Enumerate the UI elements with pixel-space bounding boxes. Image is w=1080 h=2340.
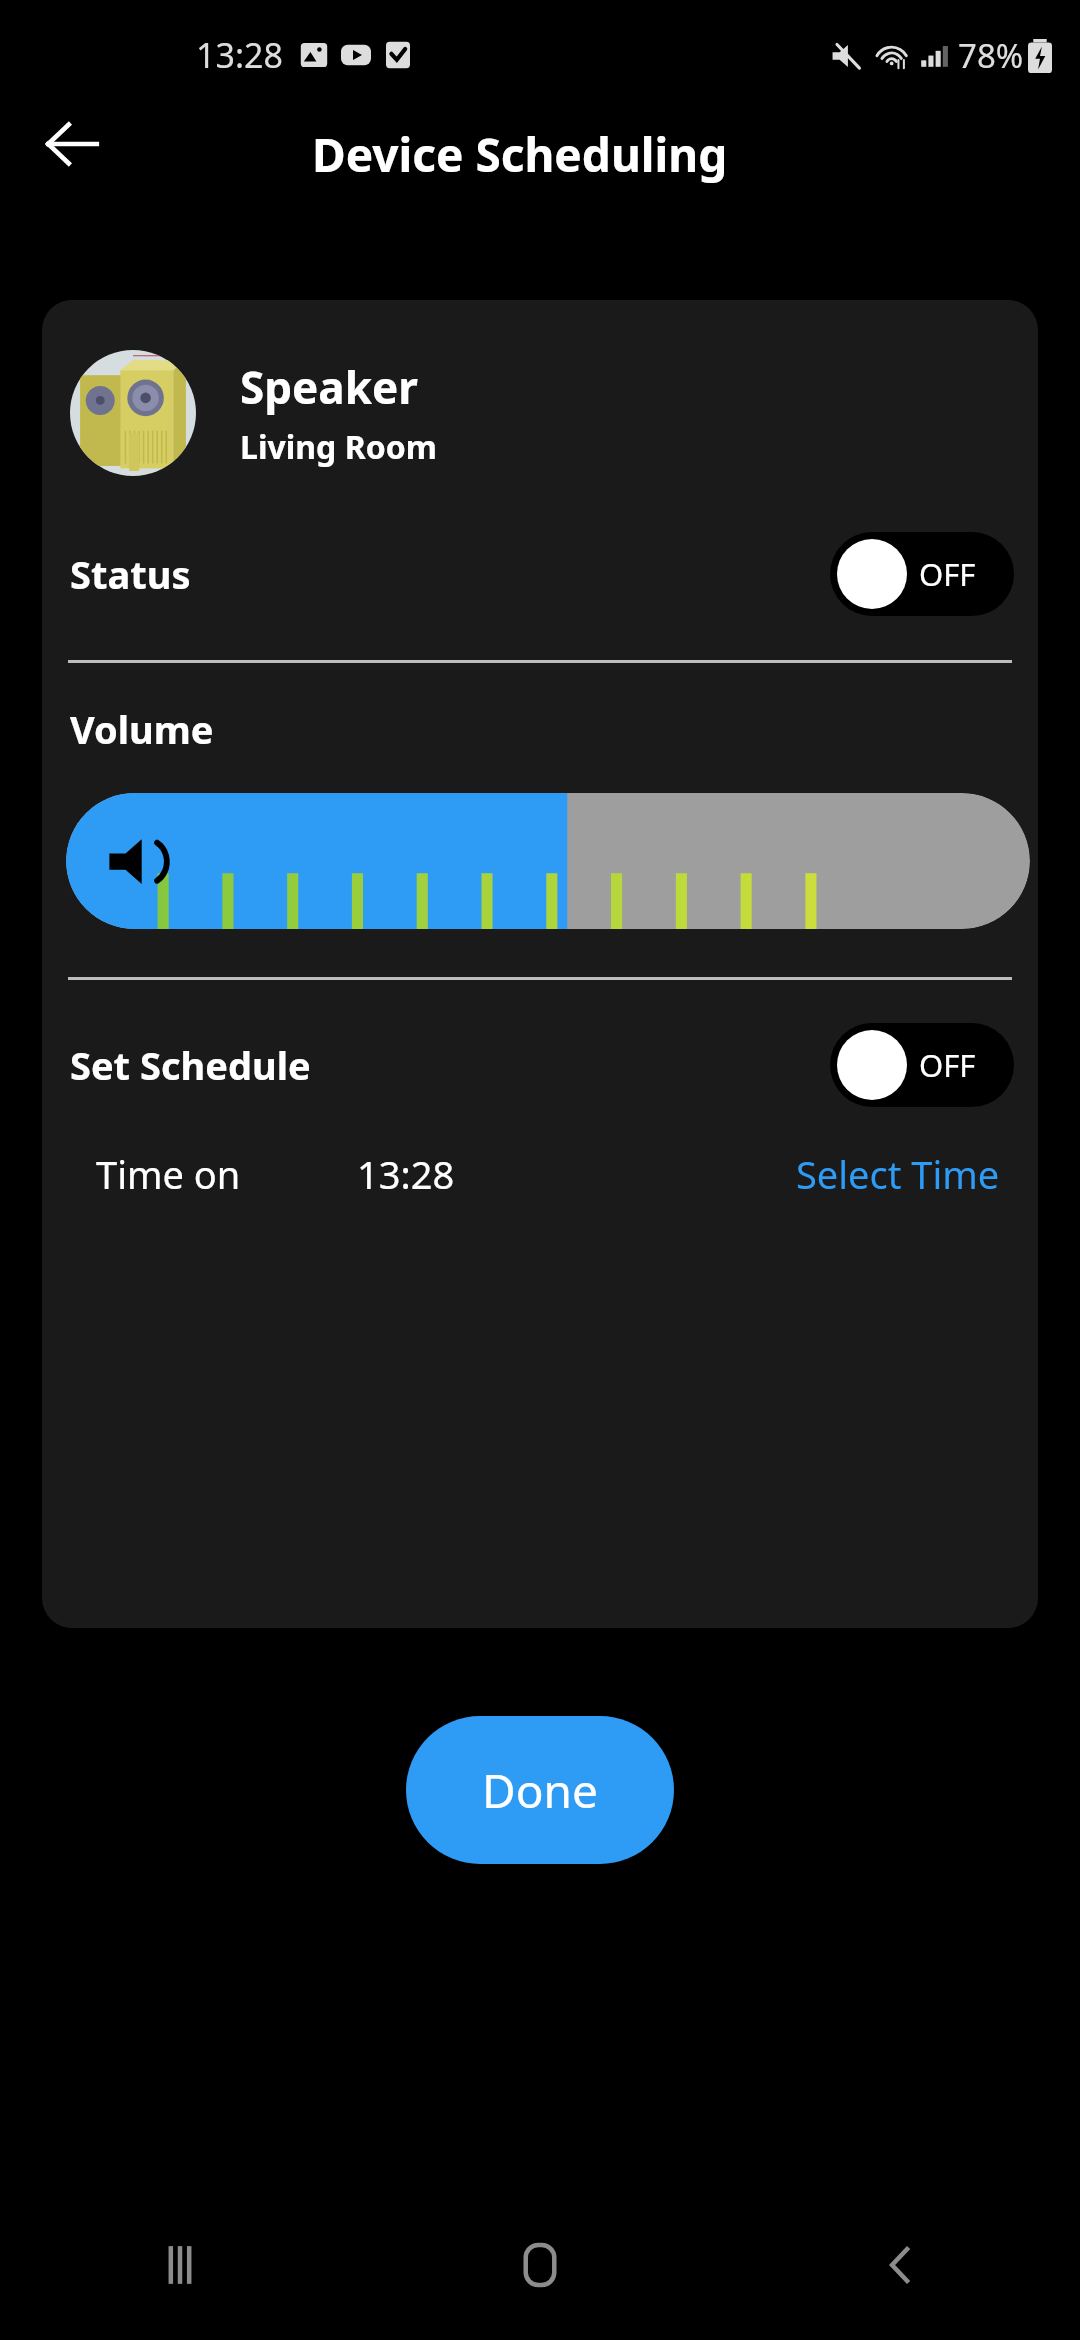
staticText: Done xyxy=(482,1759,598,1822)
button[interactable]: Back xyxy=(720,2190,1080,2340)
staticText: Select Time xyxy=(796,1148,1000,1200)
staticText: 78% xyxy=(958,33,1024,78)
staticText: 13:28 xyxy=(196,32,283,78)
button[interactable]: OFF xyxy=(830,532,1014,616)
button[interactable] xyxy=(66,793,1030,929)
button[interactable]: Set Schedule xyxy=(42,1010,1038,1120)
staticText: Set Schedule xyxy=(70,1039,311,1091)
button[interactable]: OFF xyxy=(830,1023,1014,1107)
staticText: Device Scheduling xyxy=(312,123,728,186)
staticText: Speaker xyxy=(240,357,418,417)
button[interactable]: Home xyxy=(360,2190,720,2340)
button[interactable]: Back xyxy=(32,104,112,184)
staticText: OFF xyxy=(919,553,976,595)
button[interactable]: Select Time xyxy=(792,1144,1004,1204)
button[interactable]: Recents xyxy=(0,2190,360,2340)
staticText: Volume xyxy=(70,703,214,755)
button[interactable]: Status xyxy=(42,524,1038,624)
staticText: 13:28 xyxy=(357,1148,455,1200)
button[interactable]: Done xyxy=(406,1716,674,1864)
staticText: OFF xyxy=(919,1044,976,1086)
staticText: Status xyxy=(70,548,191,600)
staticText: Living Room xyxy=(240,425,437,469)
staticText: Time on xyxy=(96,1148,241,1200)
